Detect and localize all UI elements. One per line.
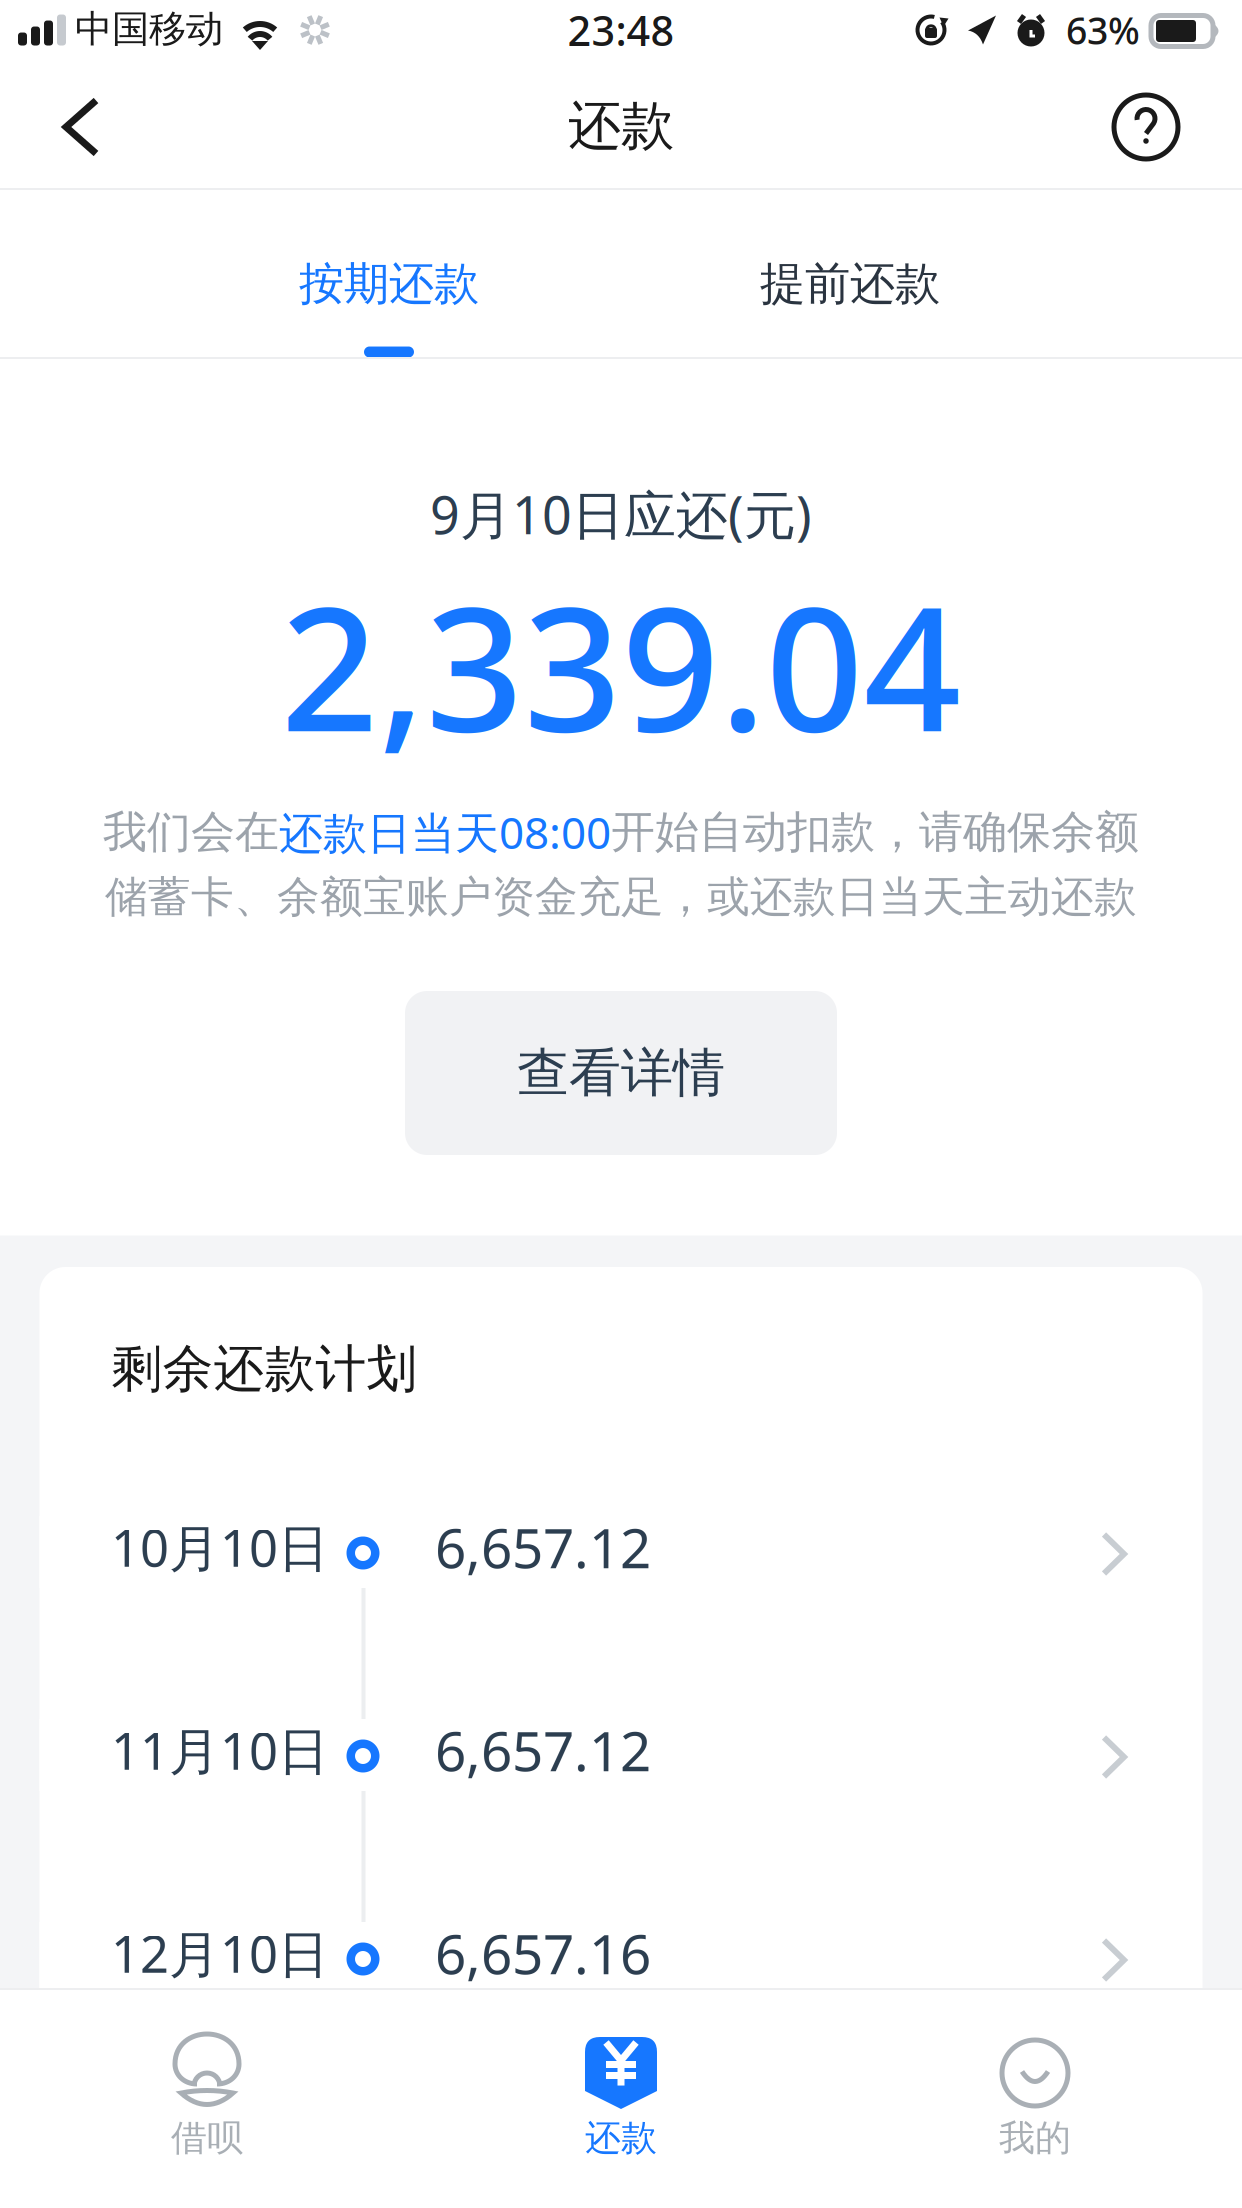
staticText: 9月10日应还(元) [430,479,812,549]
staticText: 中国移动 [75,6,223,52]
staticText: 6,657.12 [435,1511,651,1583]
staticText: 储蓄卡、余额宝账户资金充足，或还款日当天主动还款 [105,871,1137,923]
button[interactable]: 12月10日 [39,1922,1202,1994]
staticText: 我们会在 [103,805,279,859]
staticText: 我的 [999,2116,1071,2160]
staticText: 借呗 [171,2116,243,2160]
staticText: 11月10日 [111,1716,329,1784]
staticText: 10月10日 [111,1513,329,1581]
staticText: 还款 [585,2116,657,2160]
button[interactable]: 还款 [414,1990,828,2208]
staticText: 按期还款 [299,256,479,312]
staticText: 提前还款 [760,256,940,312]
staticText: 查看详情 [517,1041,725,1105]
staticText: 6,657.12 [435,1714,651,1786]
button[interactable]: 按期还款 [189,193,589,359]
staticText: 6,657.16 [435,1917,651,1989]
button[interactable]: Back [6,64,156,190]
staticText: 12月10日 [111,1919,329,1987]
button[interactable]: 我的 [828,1990,1242,2208]
staticText: 还款 [568,93,674,159]
staticText: 63% [1066,5,1140,55]
staticText: 剩余还款计划 [111,1338,417,1400]
button[interactable]: 10月10日 [39,1516,1202,1588]
button[interactable]: 11月10日 [39,1719,1202,1791]
staticText: 还款日当天08:00 [279,803,611,861]
staticText: 2,339.04 [280,552,961,778]
staticText: 开始自动扣款，请确保余额 [611,805,1139,859]
button[interactable]: Help [1071,64,1221,190]
button[interactable]: 提前还款 [650,193,1050,359]
staticText: 23:48 [567,3,674,57]
button[interactable]: 查看详情 [405,991,837,1155]
button[interactable]: 借呗 [0,1990,414,2208]
